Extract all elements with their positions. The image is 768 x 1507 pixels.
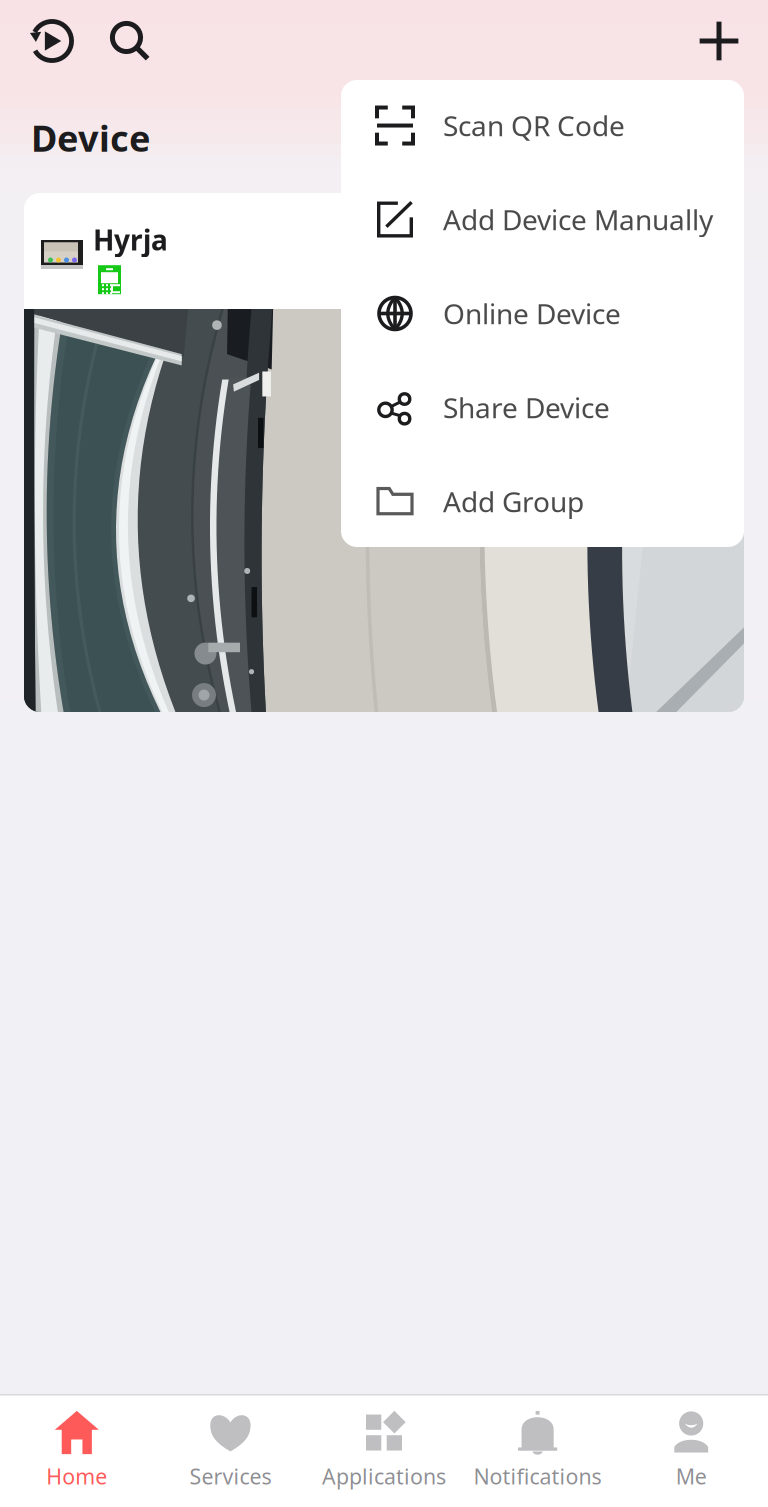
button[interactable]: Scan QR Code <box>341 78 744 172</box>
staticText: Add Group <box>443 483 584 520</box>
button[interactable]: Me <box>614 1394 768 1507</box>
button[interactable]: Playback <box>26 15 78 67</box>
button[interactable]: Home <box>0 1394 154 1507</box>
staticText: Scan QR Code <box>443 107 625 144</box>
button[interactable]: Add device <box>694 16 744 66</box>
staticText: Share Device <box>443 389 610 426</box>
staticText: Me <box>676 1462 707 1490</box>
button[interactable]: Share Device <box>341 360 744 454</box>
button[interactable]: Add Group <box>341 454 744 548</box>
staticText: Applications <box>322 1462 446 1490</box>
staticText: Services <box>189 1462 271 1490</box>
button[interactable]: Online Device <box>341 266 744 360</box>
staticText: Device <box>31 114 150 162</box>
button[interactable]: Services <box>154 1394 307 1507</box>
staticText: Notifications <box>474 1462 602 1490</box>
button[interactable]: Notifications <box>461 1394 614 1507</box>
staticText: Hyrja <box>93 221 168 258</box>
staticText: Online Device <box>443 295 621 332</box>
button[interactable]: Applications <box>307 1394 461 1507</box>
button[interactable]: Add Device Manually <box>341 172 744 266</box>
staticText: Home <box>46 1462 107 1490</box>
button[interactable]: Search <box>104 15 156 67</box>
staticText: Add Device Manually <box>443 201 713 238</box>
